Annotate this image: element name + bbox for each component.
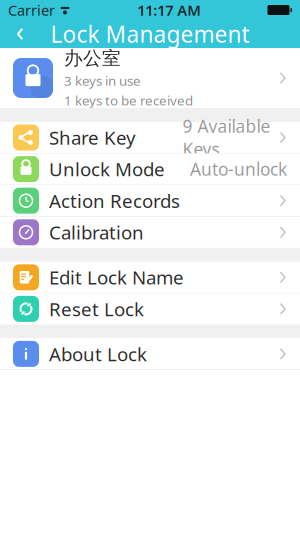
staticText: Edit Lock Name — [49, 265, 184, 290]
staticText: 3 keys in use — [64, 72, 141, 89]
button[interactable]: Unlock Mode — [0, 154, 300, 185]
staticText: Unlock Mode — [49, 157, 165, 181]
button[interactable]: Calibration — [0, 217, 300, 248]
staticText: Carrier — [8, 0, 55, 20]
staticText: About Lock — [49, 341, 147, 366]
button[interactable]: About Lock — [0, 338, 300, 369]
button[interactable]: Action Records — [0, 185, 300, 216]
staticText: 11:17 AM — [137, 0, 201, 20]
staticText: Share Key — [49, 125, 136, 150]
staticText: Action Records — [49, 188, 180, 213]
staticText: 办公室 — [64, 47, 121, 70]
staticText: 9 Available Keys — [183, 114, 271, 160]
staticText: 1 keys to be received — [64, 91, 193, 109]
staticText: Auto-unlock — [190, 158, 287, 181]
staticText: Lock Management — [50, 19, 249, 49]
button[interactable]: 办公室 — [0, 48, 300, 108]
button[interactable]: Back — [0, 20, 40, 48]
staticText: Reset Lock — [49, 296, 144, 321]
button[interactable]: Reset Lock — [0, 293, 300, 324]
button[interactable]: Edit Lock Name — [0, 262, 300, 293]
button[interactable]: Share Key — [0, 122, 300, 153]
staticText: Calibration — [49, 220, 144, 245]
